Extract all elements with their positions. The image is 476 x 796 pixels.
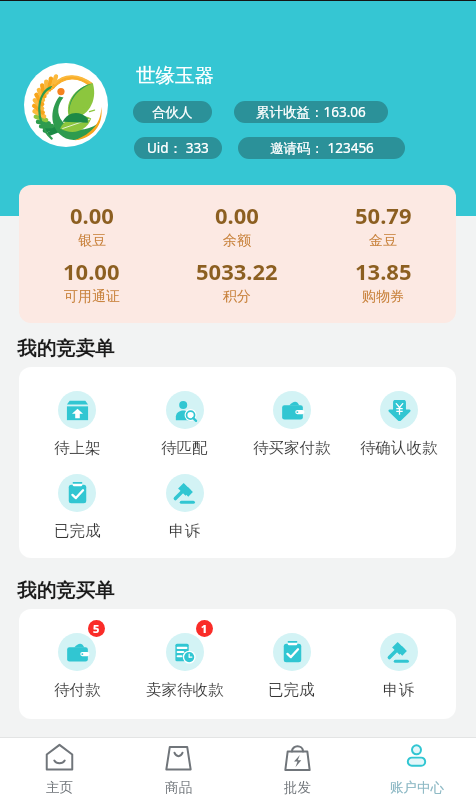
staticText: 账户中心 — [390, 779, 444, 796]
button[interactable]: 待确认收款 — [345, 391, 452, 458]
button[interactable]: 1 — [131, 633, 238, 700]
staticText: 可用通证 — [64, 288, 120, 306]
staticText: 卖家待收款 — [146, 680, 224, 700]
staticText: 申诉 — [169, 521, 200, 541]
staticText: 商品 — [165, 779, 192, 796]
button[interactable]: 商品 — [119, 738, 238, 796]
button[interactable]: 5 — [23, 633, 131, 700]
staticText: Uid： 333 — [147, 139, 209, 157]
button[interactable]: 待匹配 — [131, 391, 238, 458]
staticText: 50.79 — [355, 200, 412, 230]
staticText: 0.00 — [70, 200, 114, 230]
staticText: 购物券 — [362, 288, 404, 306]
button[interactable]: 批发 — [238, 738, 357, 796]
button[interactable]: 账户中心 — [357, 738, 476, 796]
staticText: 10.00 — [63, 256, 120, 286]
staticText: 待上架 — [54, 438, 101, 458]
button[interactable]: 邀请码： 123456 — [238, 137, 405, 159]
staticText: 待付款 — [54, 680, 101, 700]
staticText: 合伙人 — [152, 104, 193, 121]
staticText: 待确认收款 — [360, 438, 438, 458]
staticText: 申诉 — [383, 680, 414, 700]
staticText: 已完成 — [54, 521, 101, 541]
button[interactable]: 待买家付款 — [238, 391, 345, 458]
button[interactable]: 待上架 — [23, 391, 131, 458]
button[interactable]: 50.79 — [310, 200, 456, 250]
staticText: 我的竞买单 — [17, 578, 115, 603]
staticText: 待买家付款 — [253, 438, 331, 458]
button[interactable]: 申诉 — [131, 474, 238, 541]
button[interactable]: 合伙人 — [133, 101, 212, 123]
button[interactable]: 0.00 — [19, 200, 164, 250]
button[interactable]: 10.00 — [19, 256, 164, 306]
staticText: 邀请码： 123456 — [270, 139, 374, 157]
button[interactable]: 13.85 — [310, 256, 456, 306]
button[interactable]: 已完成 — [238, 633, 345, 700]
staticText: 1 — [201, 621, 208, 636]
staticText: 金豆 — [369, 232, 397, 250]
staticText: 待匹配 — [161, 438, 208, 458]
staticText: 0.00 — [215, 200, 259, 230]
staticText: 主页 — [46, 779, 73, 796]
staticText: 我的竞卖单 — [17, 336, 115, 361]
staticText: 银豆 — [78, 232, 106, 250]
staticText: 已完成 — [268, 680, 315, 700]
button[interactable]: 0.00 — [164, 200, 310, 250]
button[interactable]: Uid： 333 — [134, 137, 222, 159]
staticText: 5033.22 — [196, 256, 278, 286]
button[interactable]: 已完成 — [23, 474, 131, 541]
staticText: 世缘玉器 — [136, 63, 214, 88]
staticText: 余额 — [223, 232, 251, 250]
staticText: 5 — [93, 621, 100, 636]
staticText: 累计收益：163.06 — [256, 103, 366, 121]
button[interactable]: 5033.22 — [164, 256, 310, 306]
button[interactable]: 主页 — [0, 738, 119, 796]
button[interactable]: 累计收益：163.06 — [234, 101, 388, 123]
staticText: 批发 — [284, 779, 311, 796]
staticText: 积分 — [223, 288, 251, 306]
button[interactable]: 申诉 — [345, 633, 452, 700]
staticText: 13.85 — [355, 256, 412, 286]
